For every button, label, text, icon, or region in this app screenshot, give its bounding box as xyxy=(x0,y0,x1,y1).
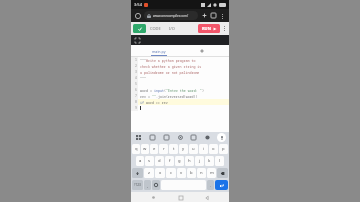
staticText: = xyxy=(146,94,152,98)
staticText: u xyxy=(192,146,195,152)
button[interactable]: i xyxy=(199,144,208,154)
staticText: ) xyxy=(202,88,204,92)
button[interactable]: k xyxy=(205,156,214,166)
staticText: x xyxy=(159,170,162,176)
staticText: v xyxy=(180,170,183,176)
button[interactable]: g xyxy=(175,156,184,166)
staticText: CODE xyxy=(150,26,161,31)
staticText: d xyxy=(158,158,161,164)
staticText: e xyxy=(153,146,156,152)
button[interactable]: I/O xyxy=(168,23,176,34)
staticText: . xyxy=(210,183,212,188)
staticText: 7 xyxy=(135,94,137,98)
button[interactable]: . xyxy=(207,180,214,190)
button[interactable]: www.onecompiler.com/python xyxy=(144,11,198,20)
button[interactable]: Translate xyxy=(189,133,198,142)
staticText: """ xyxy=(140,76,146,80)
button[interactable]: , xyxy=(144,180,151,190)
button[interactable]: Reload xyxy=(134,12,142,20)
staticText: 8 xyxy=(135,100,137,104)
staticText: word == rev xyxy=(144,100,168,104)
button[interactable]: e xyxy=(150,144,158,154)
button[interactable]: o xyxy=(209,144,218,154)
button[interactable]: main.py xyxy=(150,48,168,55)
button[interactable]: j xyxy=(195,156,204,166)
button[interactable]: Recents xyxy=(149,193,158,202)
staticText: a xyxy=(139,158,142,164)
button[interactable]: Stickers xyxy=(148,133,157,142)
staticText: 2 xyxy=(135,64,137,68)
button[interactable]: Voice input xyxy=(217,133,226,142)
button[interactable]: Enter xyxy=(215,180,228,190)
button[interactable]: Home xyxy=(176,193,185,202)
staticText: o xyxy=(212,146,215,152)
button[interactable]: Menu xyxy=(220,23,229,34)
button[interactable]: x xyxy=(155,168,165,178)
staticText: g xyxy=(178,158,181,164)
button[interactable]: s xyxy=(145,156,154,166)
staticText: k xyxy=(208,158,211,164)
button[interactable]: h xyxy=(185,156,194,166)
button[interactable]: Shift xyxy=(132,168,143,178)
button[interactable]: u xyxy=(189,144,198,154)
staticText: rev xyxy=(140,94,146,98)
button[interactable]: RUN xyxy=(198,24,220,33)
button[interactable]: Settings xyxy=(176,133,185,142)
button[interactable]: a xyxy=(136,156,144,166)
button[interactable]: CODE xyxy=(149,23,162,34)
staticText: l xyxy=(219,158,221,164)
staticText: 3:54 xyxy=(134,2,142,7)
button[interactable]: v xyxy=(177,168,186,178)
staticText: , xyxy=(147,183,149,188)
button[interactable]: n xyxy=(197,168,206,178)
button[interactable]: d xyxy=(155,156,164,166)
staticText: 6 xyxy=(135,88,137,92)
staticText: f xyxy=(169,158,171,164)
staticText: = xyxy=(148,88,154,92)
staticText: .join(reversed(word)) xyxy=(156,94,198,98)
button[interactable]: Back xyxy=(202,193,211,202)
button[interactable]: Keyboard layouts xyxy=(134,133,143,142)
button[interactable]: Backspace xyxy=(217,168,228,178)
button[interactable]: Add file xyxy=(198,47,205,54)
button[interactable]: Tabs xyxy=(209,11,218,20)
button[interactable]: f xyxy=(165,156,174,166)
staticText: b xyxy=(190,170,193,176)
button[interactable]: GIF xyxy=(162,133,171,142)
button[interactable]: p xyxy=(219,144,228,154)
staticText: I/O xyxy=(169,26,175,31)
staticText: s xyxy=(148,158,151,164)
button[interactable]: y xyxy=(179,144,188,154)
button[interactable]: l xyxy=(215,156,224,166)
button[interactable]: w xyxy=(141,144,149,154)
staticText: check whether a given string is xyxy=(140,64,202,68)
button[interactable]: Fullscreen xyxy=(134,37,141,44)
button[interactable]: OneCompiler xyxy=(133,24,146,33)
staticText: z xyxy=(148,170,150,176)
button[interactable]: More options xyxy=(218,12,226,20)
button[interactable]: ?123 xyxy=(132,180,143,190)
staticText: h xyxy=(188,158,191,164)
button[interactable]: q xyxy=(132,144,140,154)
button[interactable]: Emoji xyxy=(203,133,212,142)
button[interactable]: m xyxy=(207,168,216,178)
button[interactable]: New tab xyxy=(200,11,209,20)
staticText: www.onecompiler.com/python xyxy=(153,14,195,18)
button[interactable]: t xyxy=(169,144,178,154)
button[interactable]: Emoji xyxy=(152,180,160,190)
staticText: p xyxy=(222,146,225,152)
staticText: m xyxy=(210,170,214,176)
button[interactable]: z xyxy=(144,168,154,178)
staticText: "" xyxy=(152,94,156,98)
staticText: 9 xyxy=(135,106,137,110)
staticText: c xyxy=(170,170,173,176)
staticText: if xyxy=(140,100,144,104)
button[interactable]: c xyxy=(166,168,176,178)
staticText: t xyxy=(173,146,175,152)
button[interactable]: b xyxy=(187,168,196,178)
staticText: y xyxy=(182,146,185,152)
staticText: 5 xyxy=(135,82,137,86)
staticText: w xyxy=(143,146,147,152)
button[interactable]: r xyxy=(159,144,168,154)
